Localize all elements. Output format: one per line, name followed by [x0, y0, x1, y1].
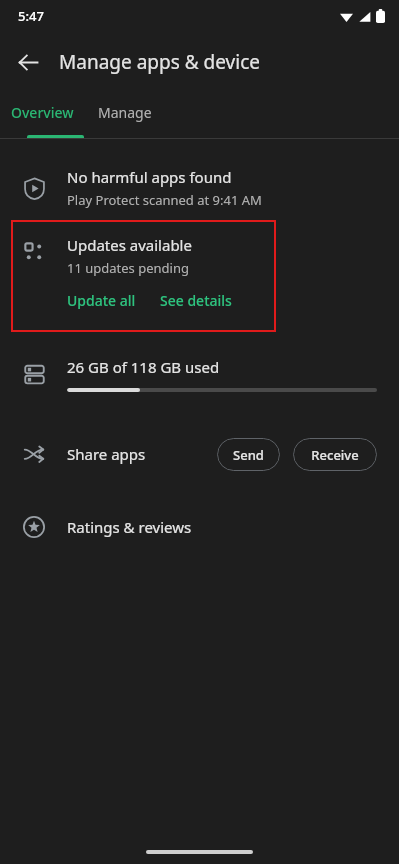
staticText: See details: [160, 291, 232, 310]
staticText: No harmful apps found: [67, 167, 232, 187]
staticText: Send: [233, 446, 264, 464]
staticText: Manage apps & device: [59, 49, 260, 75]
button[interactable]: Back: [10, 44, 46, 80]
staticText: 5:47: [18, 7, 44, 25]
button[interactable]: 26 GB of 118 GB used: [0, 343, 399, 405]
button[interactable]: No harmful apps found: [0, 158, 399, 218]
button[interactable]: Receive: [293, 438, 377, 471]
staticText: Update all: [67, 291, 136, 310]
staticText: Receive: [311, 446, 359, 464]
staticText: Updates available: [67, 235, 192, 255]
button[interactable]: Manage: [84, 92, 166, 138]
staticText: 26 GB of 118 GB used: [67, 357, 220, 377]
button[interactable]: See details: [160, 291, 232, 310]
button[interactable]: Update all: [67, 291, 136, 310]
staticText: Ratings & reviews: [67, 517, 192, 537]
button[interactable]: Send: [217, 438, 280, 471]
staticText: 11 updates pending: [67, 259, 189, 277]
button[interactable]: Overview: [0, 92, 84, 138]
staticText: Manage: [98, 103, 152, 122]
staticText: Play Protect scanned at 9:41 AM: [67, 191, 262, 209]
button[interactable]: Updates available: [0, 218, 399, 334]
button[interactable]: Ratings & reviews: [0, 501, 399, 553]
staticText: Share apps: [67, 444, 217, 464]
staticText: Overview: [11, 103, 74, 122]
